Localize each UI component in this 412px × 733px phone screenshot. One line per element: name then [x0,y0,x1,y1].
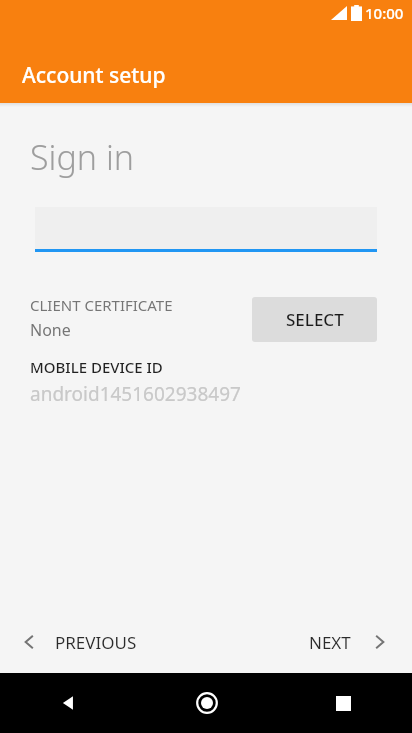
staticText: SELECT [286,308,344,331]
staticText: Sign in [30,134,135,180]
staticText: CLIENT CERTIFICATE [30,295,173,315]
staticText: MOBILE DEVICE ID [30,357,163,377]
button[interactable]: PREVIOUS [22,611,137,673]
staticText: 10:00 [365,3,404,23]
button[interactable]: Home [138,673,275,733]
staticText: Account setup [22,61,166,90]
button[interactable]: Recent apps [275,673,412,733]
staticText: None [30,319,71,341]
staticText: PREVIOUS [55,631,137,654]
button[interactable]: NEXT [309,611,387,673]
button[interactable]: SELECT [252,297,377,342]
button[interactable]: Back [0,673,138,733]
staticText: NEXT [309,631,351,654]
staticText: android1451602938497 [30,381,241,407]
